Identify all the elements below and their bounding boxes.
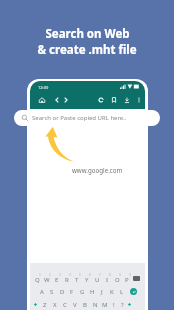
button[interactable]: D bbox=[57, 285, 67, 298]
button[interactable]: N bbox=[90, 298, 100, 310]
staticText: N bbox=[93, 301, 98, 309]
staticText: L bbox=[120, 288, 124, 296]
staticText: ! bbox=[113, 301, 115, 309]
staticText: M bbox=[102, 301, 108, 309]
staticText: C bbox=[63, 301, 67, 309]
staticText: Z bbox=[43, 301, 47, 309]
button[interactable]: X bbox=[50, 298, 60, 310]
staticText: U bbox=[95, 276, 100, 284]
button[interactable]: A bbox=[37, 285, 47, 298]
staticText: & create .mht file bbox=[37, 42, 137, 58]
staticText: S bbox=[50, 288, 54, 296]
staticText: 0 bbox=[129, 273, 131, 277]
staticText: 5 bbox=[79, 273, 81, 277]
staticText: ? bbox=[121, 301, 124, 309]
button[interactable]: G bbox=[77, 285, 87, 298]
staticText: 12:00 bbox=[38, 85, 49, 90]
button[interactable]: 9 bbox=[112, 272, 122, 285]
staticText: E bbox=[55, 276, 59, 284]
button[interactable]: Home bbox=[35, 92, 48, 107]
button[interactable]: L bbox=[117, 285, 127, 298]
staticText: G bbox=[80, 288, 85, 296]
button[interactable]: K bbox=[107, 285, 117, 298]
button[interactable]: More options bbox=[132, 92, 145, 107]
staticText: K bbox=[110, 288, 114, 296]
button[interactable]: M bbox=[100, 298, 110, 310]
button[interactable]: J bbox=[97, 285, 107, 298]
staticText: X bbox=[53, 301, 57, 309]
staticText: Q bbox=[35, 276, 40, 284]
staticText: A bbox=[40, 288, 44, 296]
button[interactable]: Forward bbox=[59, 92, 72, 107]
button[interactable]: Z bbox=[40, 298, 50, 310]
staticText: 1 bbox=[39, 273, 41, 277]
staticText: Search on Web bbox=[45, 26, 130, 42]
staticText: F bbox=[70, 288, 74, 296]
staticText: P bbox=[125, 276, 129, 284]
button[interactable]: 6 bbox=[82, 272, 92, 285]
staticText: Search or Paste copied URL here.. bbox=[32, 114, 127, 122]
staticText: V bbox=[73, 301, 77, 309]
staticText: J bbox=[101, 288, 103, 296]
button[interactable]: H bbox=[87, 285, 97, 298]
staticText: 2 bbox=[49, 273, 51, 277]
staticText: Y bbox=[85, 276, 89, 284]
staticText: 4 bbox=[69, 273, 71, 277]
staticText: 6 bbox=[89, 273, 91, 277]
button[interactable]: V bbox=[70, 298, 80, 310]
button[interactable]: 0 bbox=[122, 272, 132, 285]
button[interactable]: ? bbox=[118, 298, 126, 310]
button[interactable]: 8 bbox=[102, 272, 112, 285]
staticText: W bbox=[44, 276, 50, 284]
button[interactable]: F bbox=[67, 285, 77, 298]
button[interactable]: 4 bbox=[62, 272, 72, 285]
staticText: H bbox=[90, 288, 95, 296]
staticText: R bbox=[65, 276, 69, 284]
staticText: I bbox=[106, 276, 109, 284]
button[interactable]: 2 bbox=[42, 272, 52, 285]
staticText: www.google.com bbox=[72, 166, 123, 174]
staticText: D bbox=[60, 288, 65, 296]
button[interactable]: 3 bbox=[52, 272, 62, 285]
button[interactable]: Shift bbox=[33, 302, 38, 307]
staticText: O bbox=[115, 276, 120, 284]
button[interactable]: Back bbox=[50, 92, 63, 107]
button[interactable]: Download bbox=[120, 92, 133, 107]
button[interactable]: 5 bbox=[72, 272, 82, 285]
button[interactable]: Emoji bbox=[127, 302, 132, 307]
staticText: 3 bbox=[59, 273, 61, 277]
button[interactable]: Bookmark bbox=[107, 92, 120, 107]
button[interactable]: S bbox=[47, 285, 57, 298]
button[interactable]: 7 bbox=[92, 272, 102, 285]
staticText: 7 bbox=[99, 273, 101, 277]
button[interactable]: Enter bbox=[130, 288, 137, 295]
staticText: 8 bbox=[109, 273, 111, 277]
button[interactable]: Refresh bbox=[94, 92, 107, 107]
button[interactable]: C bbox=[60, 298, 70, 310]
button[interactable]: B bbox=[80, 298, 90, 310]
button[interactable]: ! bbox=[110, 298, 118, 310]
button[interactable]: Search or Paste copied URL here.. bbox=[14, 110, 160, 126]
button[interactable]: Backspace bbox=[133, 276, 140, 281]
button[interactable]: 1 bbox=[32, 272, 42, 285]
staticText: T bbox=[75, 276, 79, 284]
staticText: B bbox=[83, 301, 87, 309]
staticText: 9 bbox=[119, 273, 121, 277]
